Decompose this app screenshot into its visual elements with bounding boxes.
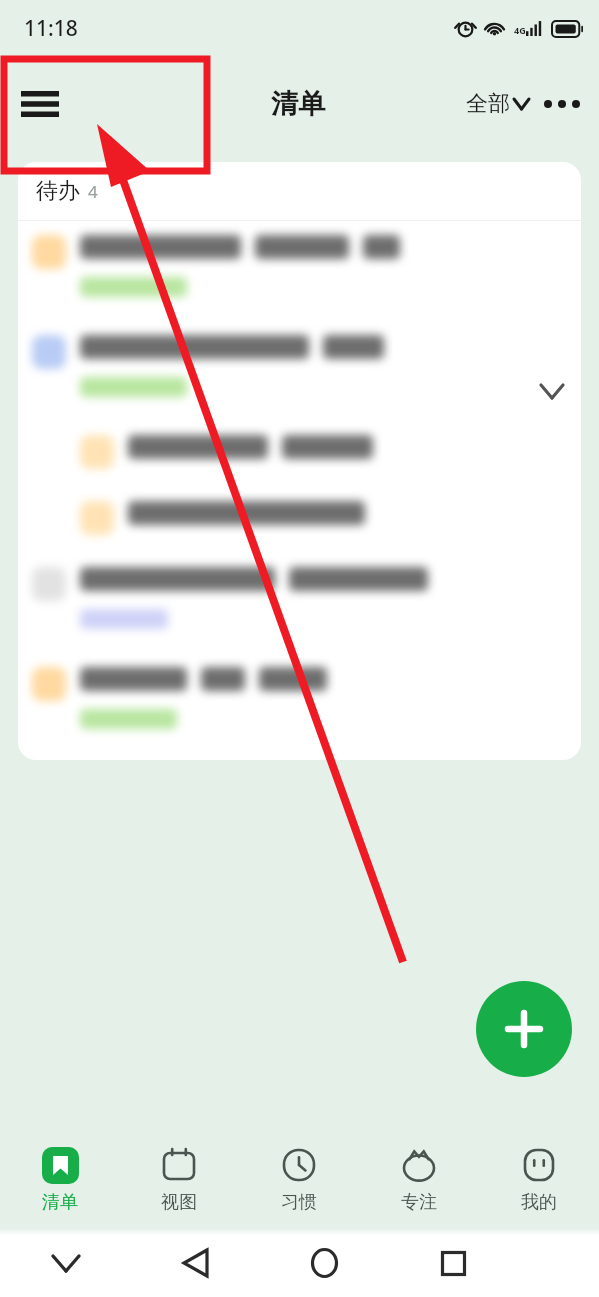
button[interactable]: Home	[298, 1237, 350, 1289]
staticText: 11:18	[24, 14, 78, 43]
staticText: 习惯	[281, 1191, 317, 1214]
staticText: 视图	[161, 1191, 197, 1214]
button[interactable]	[18, 487, 581, 553]
button[interactable]	[18, 421, 581, 487]
button[interactable]	[18, 321, 581, 421]
staticText: 清单	[271, 87, 325, 121]
button[interactable]: 专注	[359, 1131, 479, 1228]
button[interactable]: Add task	[476, 981, 572, 1077]
staticText: 4	[88, 180, 98, 203]
staticText: 4G	[514, 24, 526, 36]
button[interactable]: 视图	[119, 1131, 239, 1228]
button[interactable]	[18, 221, 581, 321]
button[interactable]: Hide keyboard	[40, 1237, 92, 1289]
staticText: 全部	[466, 90, 510, 118]
staticText: 清单	[42, 1191, 78, 1214]
button[interactable]: More options	[535, 77, 589, 131]
button[interactable]: Menu	[8, 72, 72, 136]
staticText: 专注	[401, 1191, 437, 1214]
button[interactable]: 我的	[479, 1131, 599, 1228]
button[interactable]: 全部	[460, 82, 535, 126]
button[interactable]	[18, 653, 581, 751]
staticText: 我的	[521, 1191, 557, 1214]
button[interactable]	[18, 553, 581, 653]
button[interactable]: 清单	[0, 1131, 119, 1228]
button[interactable]: 习惯	[239, 1131, 359, 1228]
staticText: 待办	[36, 177, 80, 205]
button[interactable]: Back	[169, 1237, 221, 1289]
button[interactable]: Recent apps	[427, 1237, 479, 1289]
